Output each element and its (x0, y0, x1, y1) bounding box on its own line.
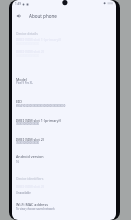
staticText: 16 (16, 160, 20, 164)
staticText: IMEI (SIM slot 2) (16, 49, 44, 54)
button[interactable] (12, 97, 116, 109)
staticText: 89049032000000000000000000000000 (16, 104, 66, 108)
button[interactable] (12, 152, 116, 163)
staticText: Pixel 9 Pro XL (16, 81, 33, 85)
button[interactable] (12, 182, 116, 194)
button[interactable]: Back (14, 11, 23, 20)
staticText: Model (16, 77, 27, 82)
staticText: Android version (16, 154, 44, 159)
staticText: IMEI (SIM slot 1 (primary)) (16, 118, 61, 123)
staticText: 350000000000000 (16, 122, 40, 126)
staticText: IMEI (SIM slot 1 (primary)) (16, 37, 61, 42)
button[interactable] (12, 135, 116, 145)
staticText: Device identifiers (16, 176, 44, 181)
staticText: Device details (16, 31, 38, 36)
staticText: To view, choose saved network (16, 207, 55, 211)
staticText: 350000000000000 (16, 141, 40, 145)
button[interactable] (12, 116, 116, 126)
staticText: EID (16, 99, 22, 104)
staticText: Unavailable (16, 191, 31, 195)
staticText: Wi-Fi MAC address (16, 202, 48, 207)
staticText: 1:49 (15, 2, 21, 6)
button[interactable] (12, 200, 116, 211)
button[interactable] (12, 75, 116, 85)
staticText: About phone (29, 13, 57, 19)
staticText: IMEI (SIM slot 2) (16, 184, 44, 189)
staticText: IMEI (SIM slot 2) (16, 137, 44, 142)
